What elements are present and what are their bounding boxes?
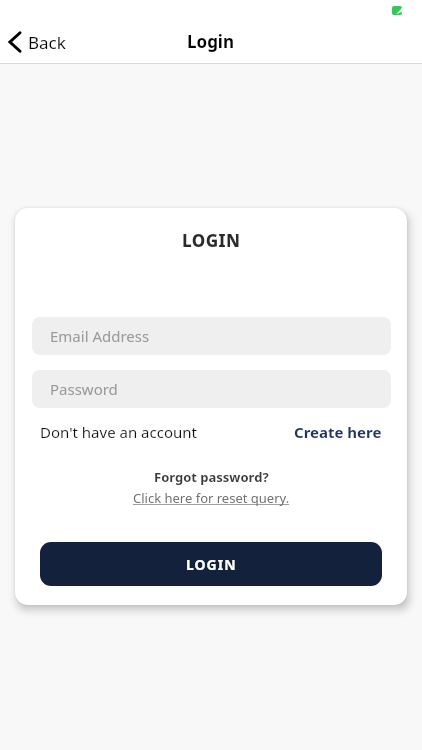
button[interactable]: Email Address: [32, 317, 391, 355]
staticText: Forgot password?: [154, 468, 269, 486]
staticText: Login: [187, 30, 235, 53]
staticText: Email Address: [50, 326, 150, 346]
button[interactable]: Back: [6, 28, 66, 56]
staticText: Password: [50, 379, 118, 399]
button[interactable]: Password: [32, 370, 391, 408]
staticText: Back: [28, 31, 66, 54]
staticText: Don't have an account: [40, 422, 197, 442]
staticText: LOGIN: [186, 555, 237, 574]
staticText: LOGIN: [182, 229, 241, 252]
button[interactable]: Create here: [294, 422, 382, 442]
button[interactable]: Click here for reset query.: [133, 489, 290, 507]
button[interactable]: LOGIN: [40, 542, 382, 586]
